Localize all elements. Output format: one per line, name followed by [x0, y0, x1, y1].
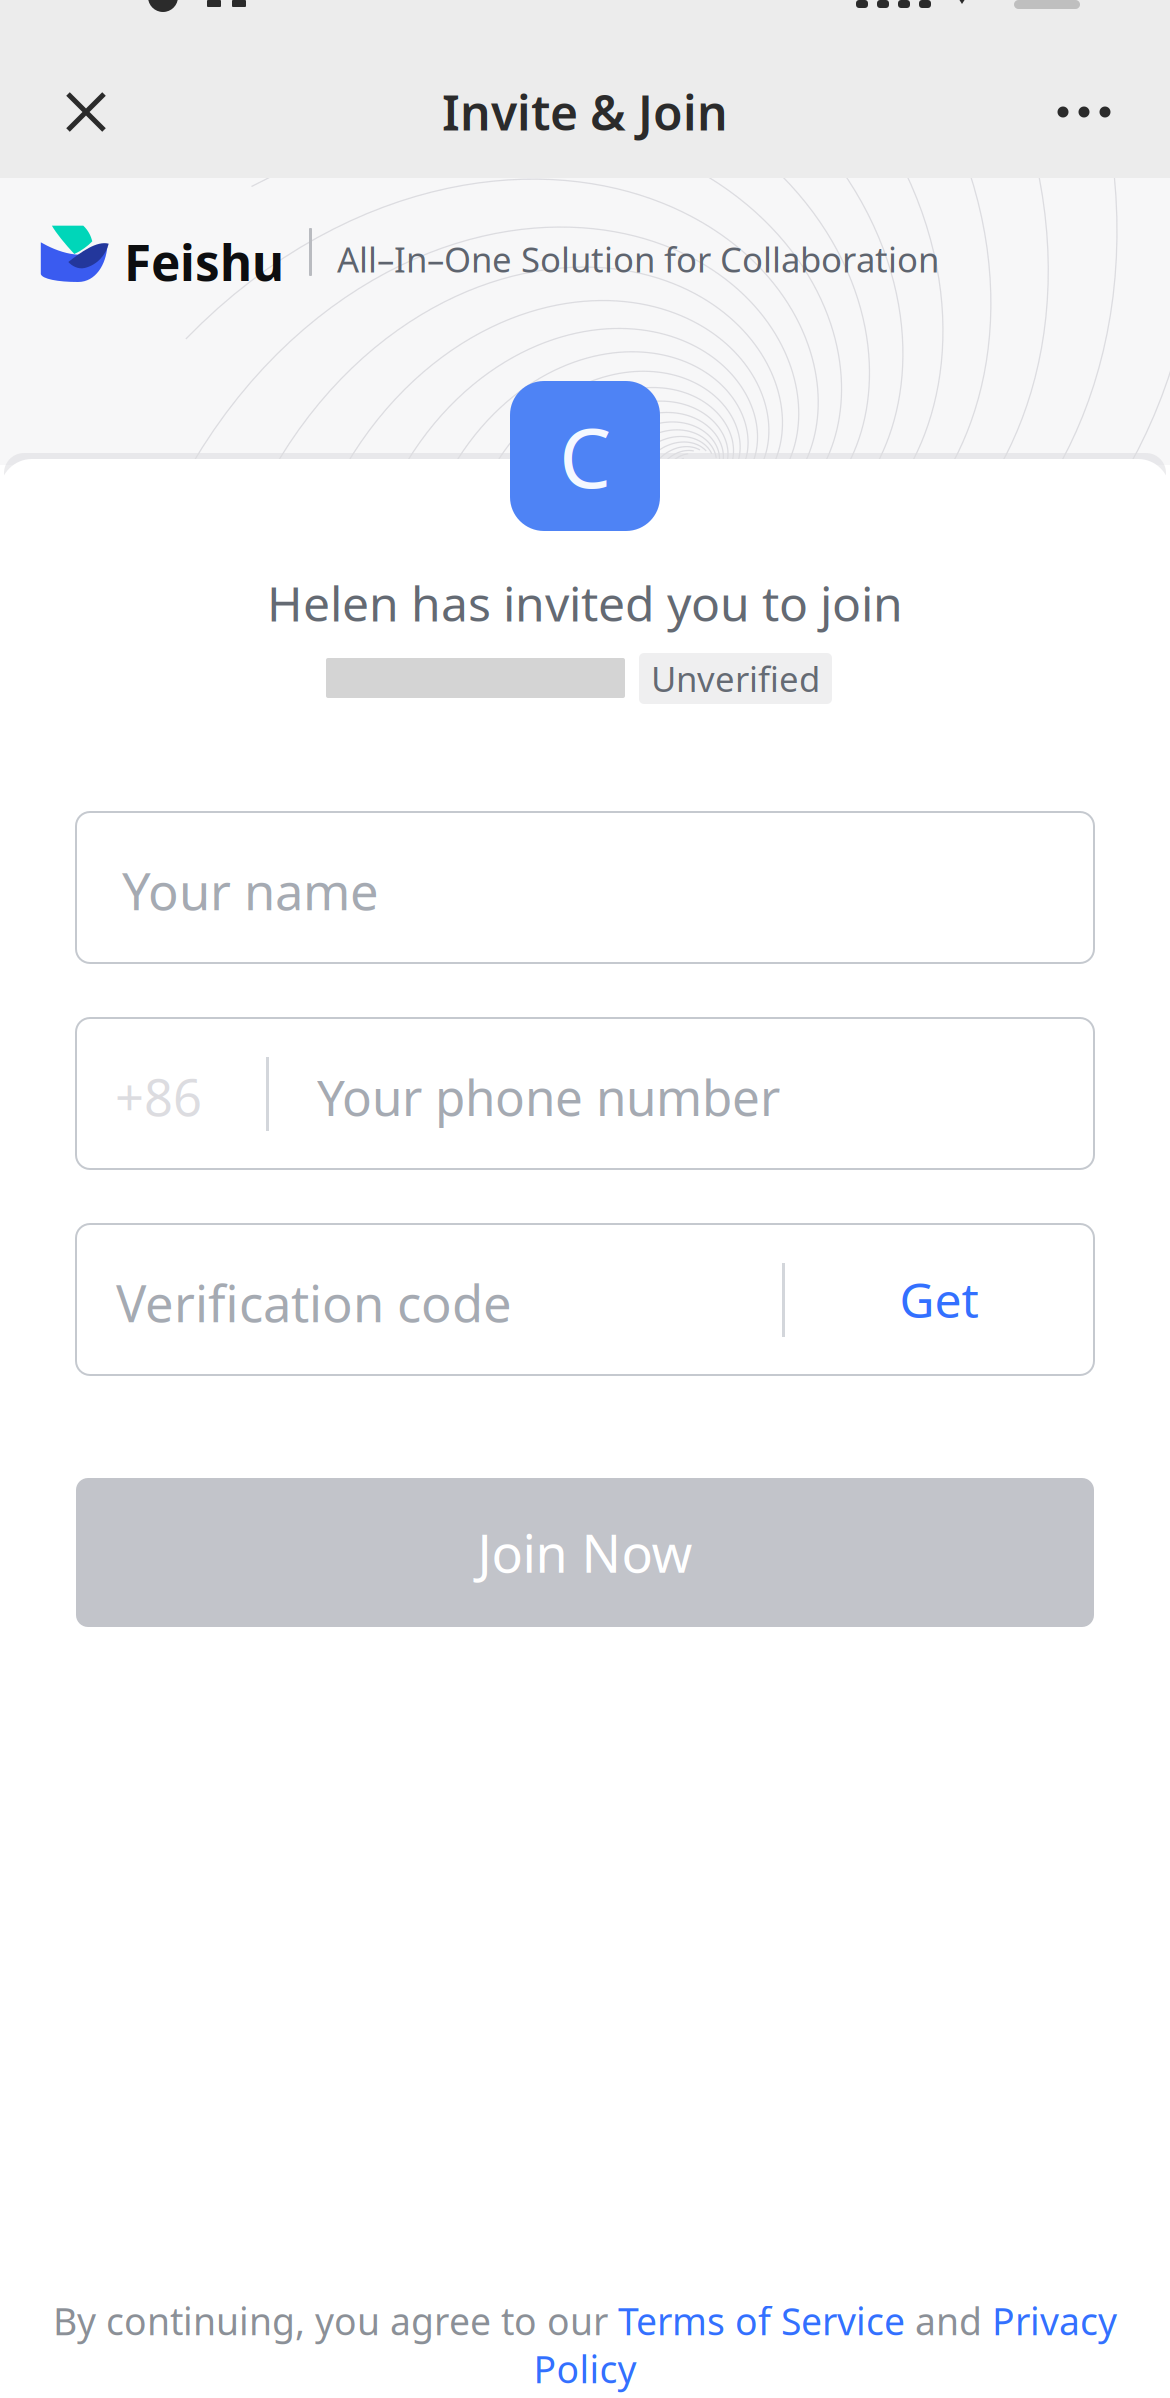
staticText: All–In–One Solution for Collaboration [337, 236, 939, 282]
button[interactable]: Privacy [992, 2296, 1117, 2346]
staticText: Privacy [992, 2296, 1117, 2346]
staticText: Unverified [651, 655, 820, 701]
staticText: and [905, 2296, 992, 2346]
staticText: Invite & Join [442, 80, 728, 144]
staticText: Feishu [124, 229, 284, 294]
staticText: Get [899, 1268, 978, 1331]
button[interactable]: Terms of Service [618, 2296, 905, 2346]
button[interactable]: Policy [533, 2344, 636, 2394]
staticText: +86 [115, 1063, 202, 1130]
button[interactable]: Close [30, 56, 142, 168]
staticText: Your name [122, 857, 379, 924]
button[interactable]: Get [784, 1224, 1094, 1375]
staticText: Your phone number [317, 1064, 780, 1129]
staticText: C [559, 401, 611, 511]
button[interactable]: Join Now [76, 1478, 1094, 1627]
staticText: Join Now [477, 1518, 692, 1587]
staticText: Verification code [116, 1269, 512, 1336]
button[interactable]: More options [1028, 56, 1140, 168]
staticText: By continuing, you agree to our [53, 2296, 618, 2346]
staticText: Helen has invited you to join [267, 571, 903, 635]
staticText: Terms of Service [618, 2296, 905, 2346]
staticText: Policy [533, 2344, 636, 2394]
